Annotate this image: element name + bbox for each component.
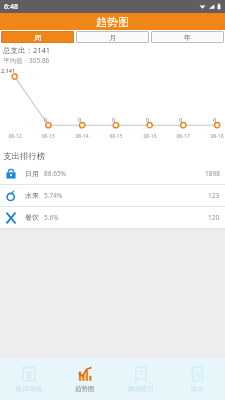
staticText: 账本 [191, 385, 204, 393]
staticText: 水果 [25, 191, 39, 200]
staticText: 08-14 [73, 133, 91, 140]
staticText: 88.65% [44, 169, 67, 178]
staticText: 餐饮 [25, 213, 39, 222]
button[interactable]: 年 [151, 31, 224, 43]
staticText: 1898 [205, 169, 220, 178]
staticText: 趋势图 [75, 385, 95, 393]
staticText: 08-18 [208, 133, 225, 140]
staticText: 平均值：305.86 [3, 56, 50, 65]
staticText: 5.6% [44, 213, 59, 222]
staticText: 0 [213, 116, 217, 123]
staticText: 5.74% [44, 191, 63, 200]
staticText: 0 [44, 116, 48, 123]
staticText: 08-17 [174, 133, 192, 140]
staticText: 0 [78, 116, 82, 123]
staticText: 6:48 [4, 2, 18, 12]
staticText: 添加账目 [128, 385, 154, 393]
staticText: 日用 [25, 169, 39, 178]
staticText: 0 [112, 116, 116, 123]
staticText: 0 [146, 116, 150, 123]
button[interactable]: 账本 [169, 358, 225, 400]
staticText: 支出排行榜 [3, 151, 46, 162]
button[interactable]: 日用 [0, 163, 225, 184]
staticText: 120 [208, 213, 220, 222]
button[interactable]: 月 [76, 31, 149, 43]
button[interactable]: 账目明细 [0, 358, 57, 400]
staticText: 08-16 [141, 133, 159, 140]
staticText: 2,141 [1, 67, 16, 74]
staticText: 趋势图 [96, 15, 129, 29]
button[interactable]: 趋势图 [57, 358, 113, 400]
staticText: 08-13 [39, 133, 57, 140]
staticText: 123 [208, 191, 220, 200]
staticText: 周 [34, 33, 41, 42]
staticText: 年 [184, 33, 191, 42]
staticText: 账目明细 [16, 385, 42, 393]
staticText: 月 [109, 33, 116, 42]
button[interactable]: 添加账目 [113, 358, 169, 400]
staticText: 08-15 [107, 133, 125, 140]
staticText: 0 [179, 116, 183, 123]
staticText: 08-12 [6, 133, 24, 140]
button[interactable]: 水果 [0, 185, 225, 206]
button[interactable]: 餐饮 [0, 207, 225, 228]
button[interactable]: 周 [1, 31, 74, 43]
staticText: 总支出：2141 [3, 45, 51, 55]
